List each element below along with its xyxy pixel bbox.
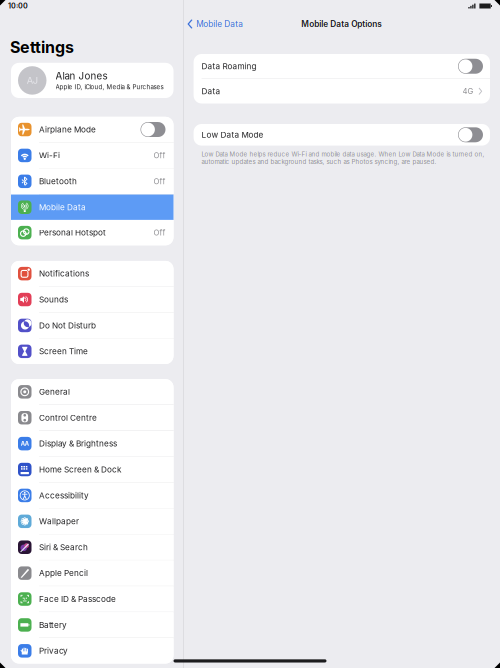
button[interactable]: Sounds — [11, 287, 173, 312]
staticText: Off — [153, 228, 165, 237]
staticText: 4G — [463, 87, 474, 96]
button[interactable]: Control Centre — [11, 405, 173, 430]
staticText: Bluetooth — [39, 176, 77, 186]
staticText: Off — [153, 177, 165, 186]
staticText: Accessibility — [39, 490, 89, 500]
staticText: Low Data Mode helps reduce Wi-Fi and mob… — [202, 151, 485, 165]
staticText: Do Not Disturb — [39, 320, 96, 330]
staticText: Apple Pencil — [39, 568, 88, 578]
staticText: Wallpaper — [39, 516, 79, 526]
button[interactable]: Airplane Mode — [11, 117, 173, 142]
button[interactable]: Apple Pencil — [11, 560, 173, 586]
staticText: Mobile Data — [39, 202, 86, 212]
staticText: Notifications — [39, 269, 89, 278]
staticText: Home Screen & Dock — [39, 465, 121, 474]
staticText: Battery — [39, 620, 67, 630]
button[interactable]: Notifications — [11, 261, 173, 286]
button[interactable]: Data Roaming — [194, 54, 490, 78]
button[interactable]: Mobile Data — [184, 17, 249, 30]
button[interactable]: Screen Time — [11, 339, 173, 364]
button[interactable]: Siri & Search — [11, 534, 173, 560]
staticText: Alan Jones — [55, 70, 107, 82]
staticText: Face ID & Passcode — [39, 594, 116, 604]
button[interactable]: Low Data Mode — [194, 124, 490, 146]
button[interactable]: AJ — [11, 63, 173, 98]
button[interactable]: General — [11, 379, 173, 404]
button[interactable]: Face ID & Passcode — [11, 586, 173, 612]
staticText: General — [39, 387, 70, 397]
staticText: Sounds — [39, 295, 68, 304]
staticText: Privacy — [39, 646, 68, 656]
button[interactable]: Personal Hotspot — [11, 220, 173, 245]
staticText: Low Data Mode — [202, 130, 264, 140]
staticText: AA — [21, 440, 29, 447]
button[interactable]: Mobile Data — [11, 194, 173, 220]
button[interactable]: Battery — [11, 612, 173, 638]
staticText: Display & Brightness — [39, 439, 117, 448]
staticText: Apple ID, iCloud, Media & Purchases — [55, 83, 163, 91]
staticText: Mobile Data Options — [301, 19, 382, 29]
staticText: 10:00 — [8, 2, 28, 10]
staticText: Airplane Mode — [39, 125, 96, 134]
button[interactable]: Accessibility — [11, 483, 173, 508]
button[interactable]: Do Not Disturb — [11, 313, 173, 338]
staticText: Settings — [10, 37, 74, 57]
staticText: Off — [153, 151, 165, 160]
staticText: Personal Hotspot — [39, 228, 106, 237]
button[interactable]: Wallpaper — [11, 509, 173, 534]
staticText: Control Centre — [39, 413, 97, 423]
button[interactable]: Bluetooth — [11, 169, 173, 194]
staticText: Data Roaming — [202, 61, 257, 71]
staticText: Mobile Data — [196, 19, 243, 29]
staticText: Siri & Search — [39, 542, 88, 552]
staticText: Wi-Fi — [39, 150, 60, 160]
button[interactable]: Home Screen & Dock — [11, 457, 173, 482]
button[interactable]: Data — [194, 79, 490, 103]
staticText: Data — [202, 86, 221, 96]
button[interactable]: Wi-Fi — [11, 143, 173, 168]
button[interactable]: AA — [11, 431, 173, 456]
button[interactable]: Privacy — [11, 638, 173, 663]
staticText: AJ — [27, 75, 38, 86]
staticText: Screen Time — [39, 346, 88, 356]
